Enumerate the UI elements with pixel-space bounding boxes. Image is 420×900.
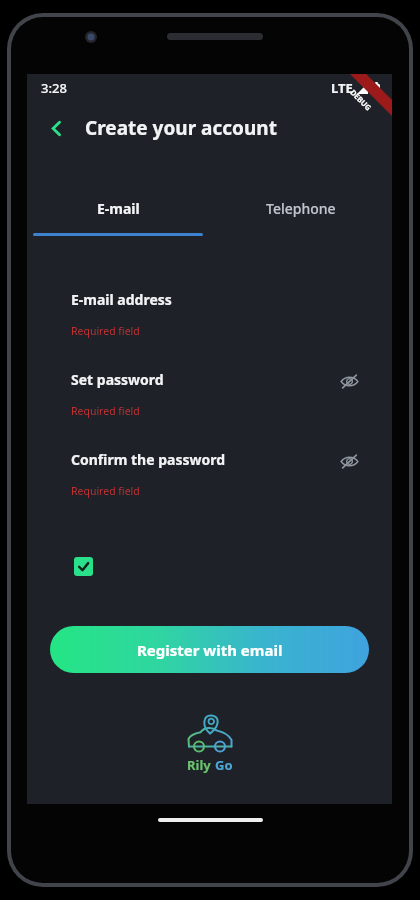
staticText: Create your account xyxy=(85,115,277,141)
staticText: Required field xyxy=(71,404,140,418)
staticText: LTE xyxy=(331,79,353,97)
staticText: DEBUG xyxy=(348,87,374,113)
staticText: Required field xyxy=(71,324,140,338)
button[interactable]: E-mail address xyxy=(27,284,392,364)
staticText: Required field xyxy=(71,484,140,498)
staticText: Register with email xyxy=(137,640,283,660)
staticText: E-mail address xyxy=(71,290,172,309)
button[interactable]: Accept terms xyxy=(67,550,99,582)
staticText: Set password xyxy=(71,370,164,389)
button[interactable]: Toggle password visibility xyxy=(332,364,366,398)
staticText: Go xyxy=(215,756,233,774)
button[interactable]: Confirm the password xyxy=(27,444,392,524)
button[interactable]: Toggle password visibility xyxy=(332,444,366,478)
button[interactable]: Telephone xyxy=(209,190,392,226)
button[interactable]: E-mail xyxy=(27,190,209,226)
staticText: 3:28 xyxy=(41,79,67,97)
button[interactable]: Back xyxy=(37,109,75,147)
staticText: Confirm the password xyxy=(71,450,225,469)
button[interactable]: Set password xyxy=(27,364,392,444)
staticText: E-mail xyxy=(97,199,140,218)
staticText: Telephone xyxy=(266,199,336,218)
button[interactable]: Register with email xyxy=(50,626,369,673)
staticText: Rily xyxy=(187,756,215,774)
